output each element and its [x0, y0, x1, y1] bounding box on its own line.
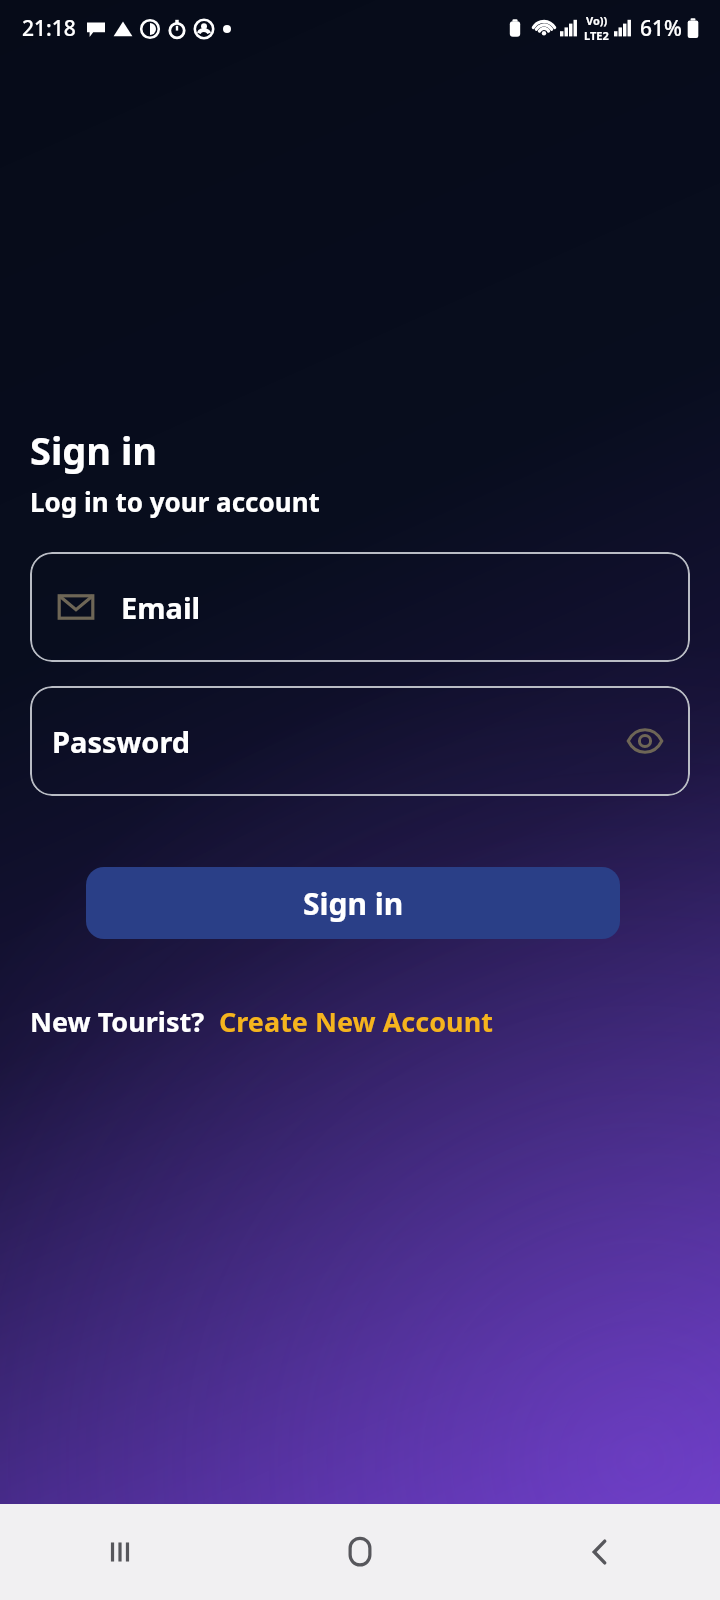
staticText: New Tourist? [30, 1003, 205, 1040]
staticText: Email [121, 588, 201, 627]
staticText: Log in to your account [30, 484, 320, 519]
button[interactable]: Recent apps [0, 1504, 240, 1600]
staticText: 21:18 [22, 14, 76, 43]
staticText: Sign in [30, 424, 157, 476]
button[interactable]: Home [240, 1504, 480, 1600]
staticText: LTE2 [584, 28, 609, 43]
staticText: Password [52, 722, 191, 761]
button[interactable]: Show password [622, 718, 668, 764]
button[interactable]: Back [480, 1504, 720, 1600]
button[interactable]: Sign in [86, 867, 620, 939]
button[interactable]: Create New Account [219, 1003, 493, 1040]
staticText: Vo)) [586, 13, 608, 28]
staticText: 61% [640, 14, 682, 43]
staticText: Create New Account [219, 1003, 493, 1040]
button[interactable]: Password [30, 686, 690, 796]
button[interactable]: Email [30, 552, 690, 662]
staticText: Sign in [303, 883, 404, 924]
